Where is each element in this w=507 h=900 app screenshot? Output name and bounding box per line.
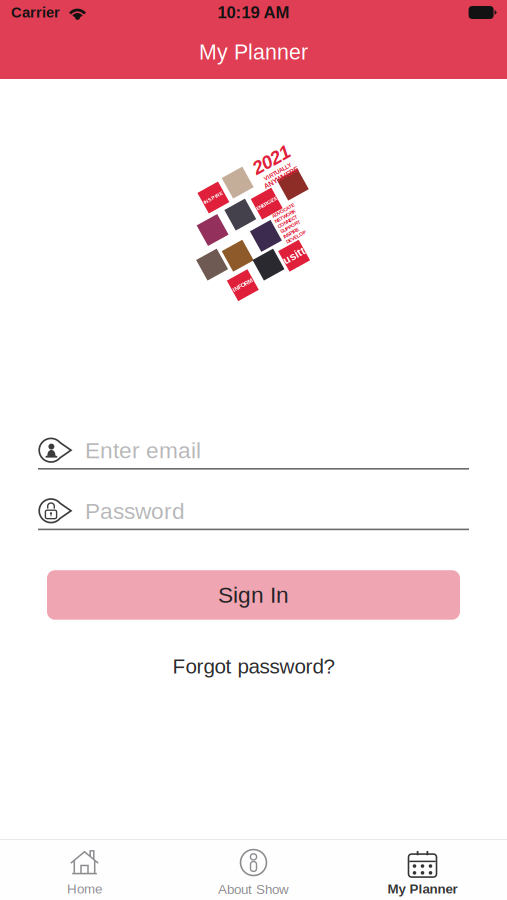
button[interactable]: My Planner bbox=[338, 840, 507, 900]
button[interactable]: Home bbox=[0, 840, 169, 900]
staticText: CONNECT bbox=[278, 218, 300, 223]
staticText: ADVOCATE bbox=[278, 206, 303, 211]
staticText: Sign In bbox=[218, 582, 289, 608]
staticText: My Planner bbox=[387, 882, 457, 896]
staticText: Password bbox=[85, 498, 185, 524]
staticText: Enter email bbox=[85, 438, 201, 463]
staticText: My Planner bbox=[199, 40, 308, 64]
staticText: 2021 bbox=[254, 149, 294, 170]
button[interactable]: About Show bbox=[169, 839, 338, 900]
staticText: INSPIRE bbox=[202, 194, 224, 200]
staticText: 10:19 AM bbox=[217, 3, 289, 22]
button[interactable]: Sign In bbox=[47, 570, 460, 620]
staticText: usitt bbox=[282, 250, 306, 262]
staticText: DEVELOP bbox=[278, 236, 300, 241]
staticText: INFORM bbox=[232, 282, 254, 288]
staticText: ANYWHERE bbox=[255, 176, 293, 183]
staticText: Home bbox=[67, 882, 102, 896]
button[interactable]: Forgot password? bbox=[172, 655, 334, 678]
staticText: VIRTUALLY bbox=[259, 170, 290, 176]
staticText: Carrier bbox=[11, 4, 60, 21]
staticText: NETWORK bbox=[278, 212, 301, 217]
staticText: INSPIRE bbox=[278, 230, 295, 235]
staticText: About Show bbox=[218, 882, 289, 897]
staticText: ENERGIZE bbox=[255, 201, 278, 206]
staticText: Forgot password? bbox=[172, 655, 334, 678]
staticText: SUPPORT bbox=[278, 224, 300, 229]
